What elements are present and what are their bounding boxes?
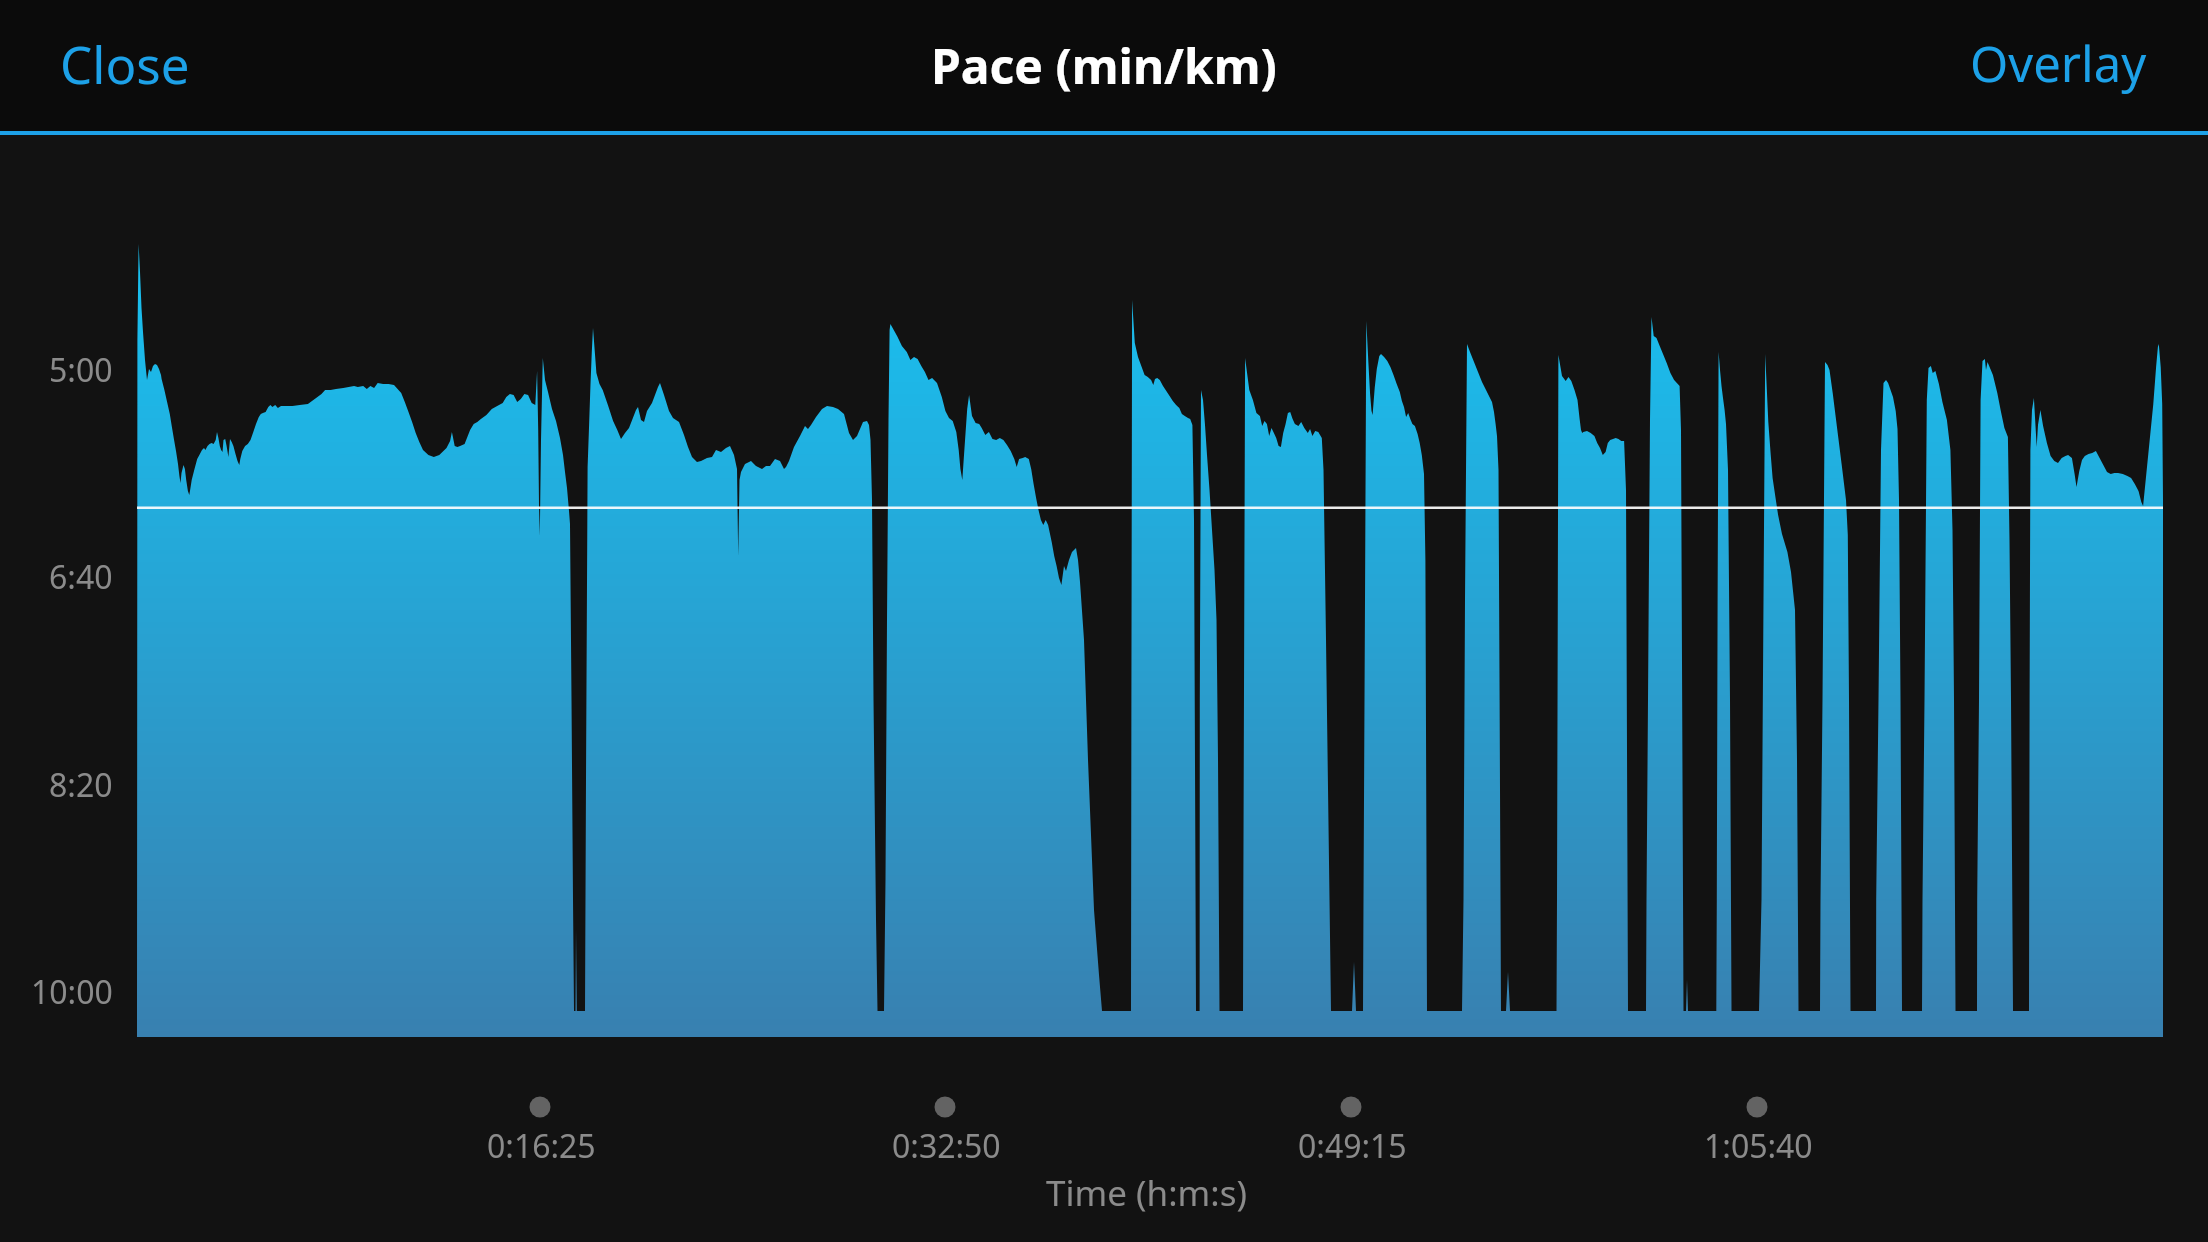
button[interactable]: Pace graph <box>0 135 2208 1242</box>
staticText: 0:32:50 <box>892 1124 1001 1168</box>
staticText: Overlay <box>1970 30 2147 97</box>
staticText: 0:49:15 <box>1298 1124 1407 1168</box>
staticText: Close <box>60 29 190 98</box>
staticText: Pace (min/km) <box>931 33 1277 98</box>
staticText: Time (h:m:s) <box>1046 1169 1247 1217</box>
staticText: 8:20 <box>49 763 113 807</box>
staticText: 0:16:25 <box>487 1124 596 1168</box>
button[interactable]: Overlay <box>1930 6 2208 125</box>
staticText: 1:05:40 <box>1704 1124 1813 1168</box>
staticText: 5:00 <box>49 348 113 392</box>
staticText: 6:40 <box>49 555 113 599</box>
button[interactable]: Close <box>0 5 230 126</box>
staticText: 10:00 <box>31 970 113 1014</box>
